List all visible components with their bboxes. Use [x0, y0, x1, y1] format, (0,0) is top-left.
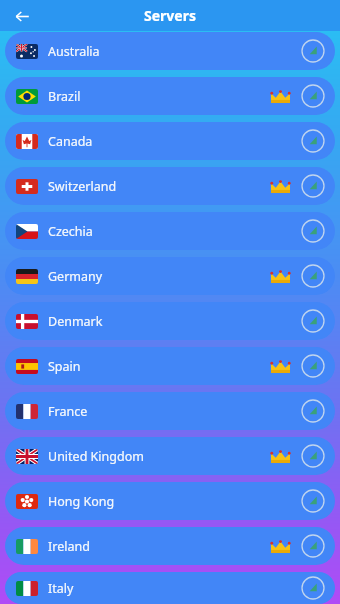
- staticText: Australia: [48, 43, 100, 60]
- staticText: Czechia: [48, 223, 93, 240]
- staticText: Switzerland: [48, 178, 117, 195]
- staticText: Brazil: [48, 88, 81, 105]
- staticText: Hong Kong: [48, 493, 115, 510]
- staticText: Denmark: [48, 313, 103, 330]
- staticText: Canada: [48, 133, 93, 150]
- button[interactable]: France: [5, 392, 335, 430]
- staticText: Ireland: [48, 538, 90, 555]
- button[interactable]: Italy: [5, 572, 335, 604]
- button[interactable]: Hong Kong: [5, 482, 335, 520]
- staticText: Spain: [48, 358, 81, 375]
- button[interactable]: Germany: [5, 257, 335, 295]
- button[interactable]: Australia: [5, 32, 335, 70]
- button[interactable]: Switzerland: [5, 167, 335, 205]
- button[interactable]: Denmark: [5, 302, 335, 340]
- button[interactable]: Brazil: [5, 77, 335, 115]
- staticText: France: [48, 403, 88, 420]
- staticText: Italy: [48, 580, 74, 597]
- button[interactable]: Canada: [5, 122, 335, 160]
- staticText: United Kingdom: [48, 448, 144, 465]
- button[interactable]: Spain: [5, 347, 335, 385]
- staticText: Germany: [48, 268, 103, 285]
- button[interactable]: United Kingdom: [5, 437, 335, 475]
- button[interactable]: Ireland: [5, 527, 335, 565]
- staticText: Servers: [0, 6, 340, 25]
- button[interactable]: Czechia: [5, 212, 335, 250]
- button[interactable]: Back: [8, 2, 36, 30]
